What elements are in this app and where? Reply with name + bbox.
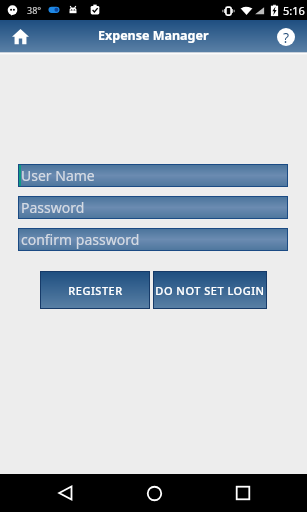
- button[interactable]: Help: [275, 26, 297, 48]
- staticText: 5:16: [283, 3, 305, 18]
- button[interactable]: Password: [19, 197, 287, 218]
- staticText: 38°: [27, 4, 42, 16]
- staticText: Password: [21, 198, 85, 217]
- button[interactable]: User Name: [19, 165, 287, 186]
- button[interactable]: DO NOT SET LOGIN: [154, 272, 266, 308]
- button[interactable]: Home: [7, 23, 33, 49]
- staticText: REGISTER: [68, 283, 123, 298]
- staticText: DO NOT SET LOGIN: [155, 283, 265, 298]
- button[interactable]: Back: [37, 474, 93, 512]
- staticText: confirm password: [21, 230, 140, 249]
- staticText: ?: [283, 28, 290, 46]
- staticText: Expense Manager: [98, 27, 209, 44]
- staticText: User Name: [21, 166, 95, 185]
- button[interactable]: confirm password: [19, 229, 287, 250]
- button[interactable]: Recent apps: [215, 474, 271, 512]
- button[interactable]: Home: [126, 474, 182, 512]
- button[interactable]: REGISTER: [41, 272, 149, 308]
